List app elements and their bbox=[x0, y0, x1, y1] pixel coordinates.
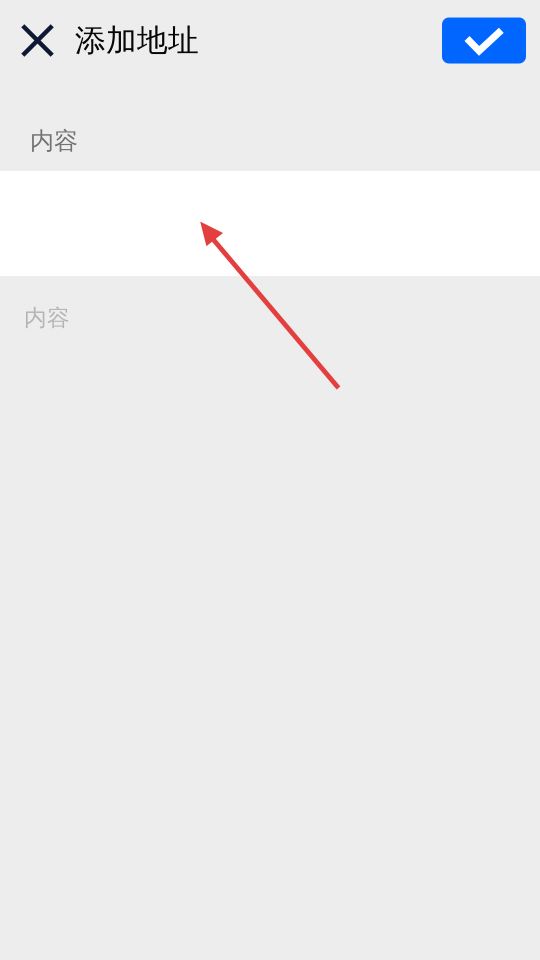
staticText: 内容 bbox=[24, 304, 70, 332]
button[interactable]: Close bbox=[11, 10, 64, 70]
staticText: 内容 bbox=[30, 126, 78, 156]
button[interactable]: Save bbox=[442, 17, 526, 63]
button[interactable]: 内容 bbox=[0, 276, 540, 360]
button[interactable]: 内容 field bbox=[0, 171, 540, 276]
button[interactable]: 添加地址 bbox=[64, 10, 199, 70]
staticText: 添加地址 bbox=[75, 22, 199, 59]
